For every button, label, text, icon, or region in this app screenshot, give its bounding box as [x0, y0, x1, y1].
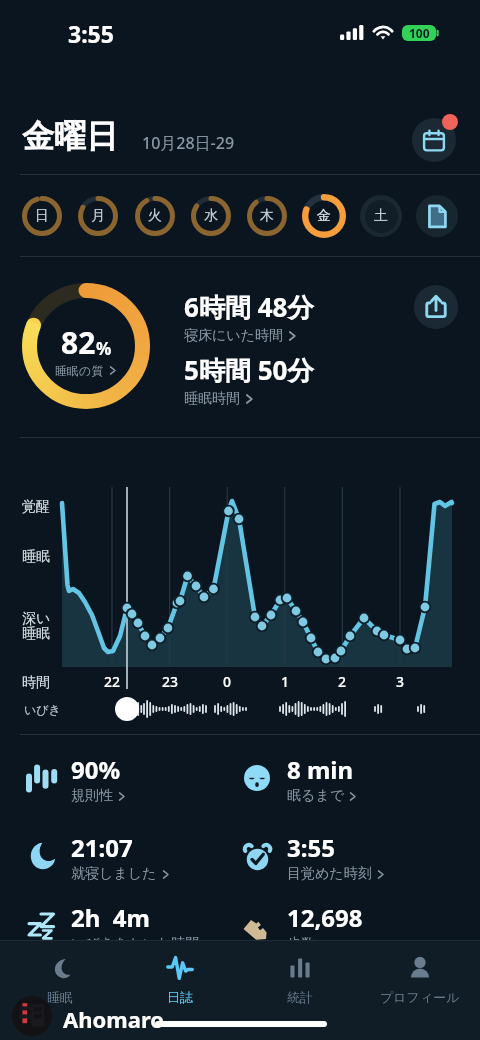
staticText: 3:55: [68, 18, 114, 49]
staticText: 目覚めた時刻: [287, 865, 372, 883]
button[interactable]: 睡眠: [0, 955, 120, 1007]
staticText: 眠るまで: [287, 787, 344, 805]
staticText: 1: [281, 672, 290, 691]
staticText: 3:55: [287, 831, 335, 864]
staticText: 睡眠: [22, 548, 50, 566]
staticText: 3: [396, 672, 405, 691]
staticText: プロフィール: [380, 989, 460, 1005]
staticText: 睡眠: [22, 625, 50, 643]
button[interactable]: 金: [302, 194, 346, 238]
button[interactable]: 3:55: [242, 830, 452, 882]
button[interactable]: Notes: [416, 195, 458, 237]
button[interactable]: 82: [22, 283, 150, 409]
staticText: 8 min: [287, 753, 354, 786]
staticText: 歩数: [287, 935, 315, 953]
staticText: 土: [374, 207, 388, 225]
staticText: 10月28日-29: [142, 132, 235, 154]
button[interactable]: Calendar: [410, 114, 460, 164]
staticText: 12,698: [287, 901, 363, 934]
staticText: 2: [338, 672, 347, 691]
staticText: 睡眠時間: [184, 390, 240, 408]
button[interactable]: 水: [191, 196, 231, 236]
button[interactable]: 21:07: [26, 830, 236, 882]
staticText: 22: [104, 672, 121, 691]
staticText: 寝床にいた時間: [184, 327, 283, 345]
button[interactable]: Share: [414, 285, 458, 329]
staticText: 金: [317, 207, 331, 225]
staticText: 覚醒: [22, 498, 50, 516]
button[interactable]: 日誌: [120, 955, 240, 1007]
button[interactable]: 8 min: [242, 752, 452, 804]
staticText: 23: [162, 672, 179, 691]
staticText: 深い: [22, 610, 51, 628]
staticText: 日誌: [167, 989, 193, 1005]
staticText: 木: [260, 207, 274, 225]
staticText: 時間: [22, 674, 50, 692]
staticText: 21:07: [71, 831, 133, 864]
staticText: 水: [204, 207, 218, 225]
staticText: 火: [148, 207, 162, 225]
staticText: いびき: [24, 702, 61, 717]
button[interactable]: 90%: [26, 752, 236, 804]
button[interactable]: 火: [135, 196, 175, 236]
staticText: 2h 4m: [71, 901, 150, 934]
staticText: %: [96, 337, 112, 360]
staticText: 金曜日: [22, 116, 118, 156]
button[interactable]: 木: [247, 196, 287, 236]
button[interactable]: 5時間 50分: [184, 352, 314, 406]
staticText: 100: [409, 25, 430, 41]
button[interactable]: 月: [78, 196, 118, 236]
staticText: 規則性: [71, 787, 113, 805]
staticText: 睡眠: [47, 989, 73, 1005]
button[interactable]: 統計: [240, 955, 360, 1007]
staticText: 82: [61, 322, 96, 363]
staticText: 睡眠の質: [55, 363, 104, 378]
staticText: 90%: [71, 753, 121, 786]
staticText: 6時間 48分: [184, 289, 314, 325]
button[interactable]: 6時間 48分: [184, 289, 314, 343]
button[interactable]: 日: [22, 196, 62, 236]
staticText: いびきをかいた時間: [71, 935, 200, 953]
staticText: 5時間 50分: [184, 352, 314, 388]
staticText: 就寝しました: [71, 865, 157, 883]
staticText: 統計: [287, 989, 313, 1005]
button[interactable]: 12,698: [242, 900, 452, 952]
button[interactable]: プロフィール: [360, 955, 480, 1007]
button[interactable]: 2h 4m: [26, 900, 236, 952]
staticText: Ahomaro: [63, 1004, 165, 1034]
staticText: 月: [91, 207, 105, 225]
staticText: 0: [223, 672, 232, 691]
staticText: 日: [35, 207, 49, 225]
button[interactable]: 土: [360, 195, 402, 237]
